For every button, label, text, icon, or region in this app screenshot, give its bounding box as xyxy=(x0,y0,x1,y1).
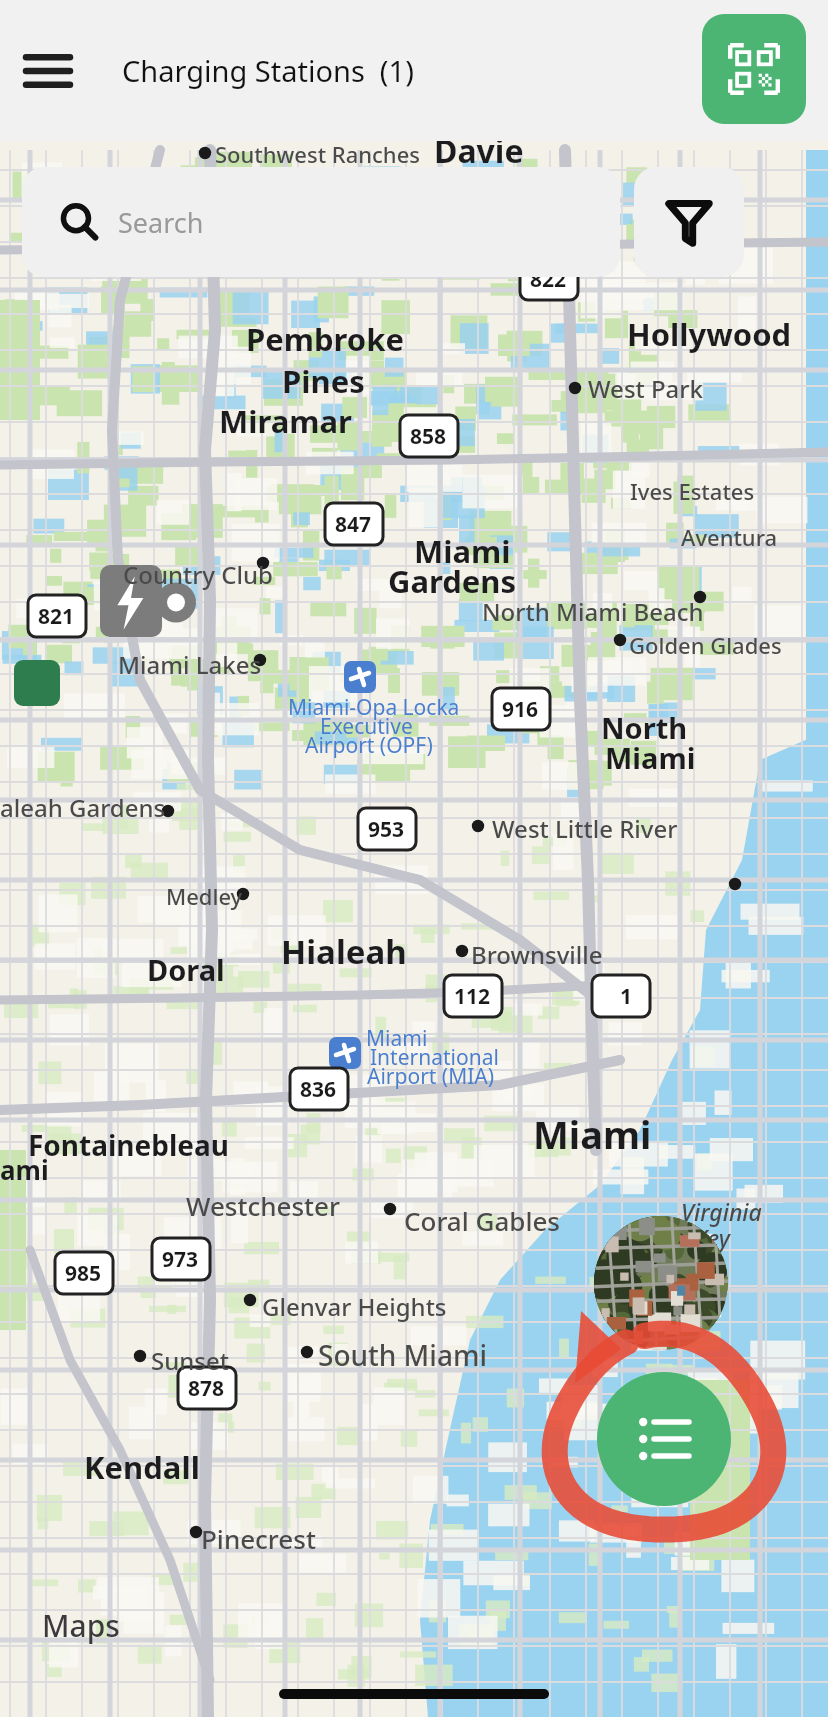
staticText: Brownsville xyxy=(471,938,603,971)
staticText: Medley xyxy=(166,881,243,911)
staticText: Miami-Opa Locka xyxy=(288,693,460,722)
button[interactable]: Scan QR code xyxy=(702,14,806,124)
staticText: 953 xyxy=(366,815,406,844)
staticText: 878 xyxy=(186,1374,226,1403)
staticText: Sunset xyxy=(151,1344,229,1377)
staticText: Aventura xyxy=(681,522,778,552)
staticText: International xyxy=(370,1043,499,1072)
staticText: Hollywood xyxy=(627,313,792,355)
staticText: 973 xyxy=(160,1245,200,1274)
staticText: Country Club xyxy=(123,558,273,591)
staticText: Pinecrest xyxy=(201,1521,316,1556)
staticText: West Park xyxy=(588,372,703,405)
staticText: ami xyxy=(0,1152,49,1187)
staticText: Golden Glades xyxy=(629,630,782,660)
staticText: 858 xyxy=(408,422,448,451)
staticText: Ives Estates xyxy=(630,476,755,506)
staticText: 1 xyxy=(606,982,646,1011)
staticText: Gardens xyxy=(388,560,517,602)
staticText: Key xyxy=(694,1222,730,1253)
staticText: Miami xyxy=(414,530,511,572)
button[interactable]: Show list xyxy=(597,1372,731,1506)
staticText: Airport (MIA) xyxy=(367,1062,495,1091)
staticText: Executive xyxy=(320,712,413,741)
staticText: West Little River xyxy=(492,812,678,845)
staticText: Maps xyxy=(42,1605,120,1646)
staticText: 112 xyxy=(452,982,492,1011)
staticText: 836 xyxy=(298,1075,338,1104)
staticText: aleah Gardens xyxy=(0,791,166,824)
staticText: Fontainebleau xyxy=(28,1126,230,1164)
staticText: Miami Lakes xyxy=(118,648,262,681)
staticText: Miami xyxy=(366,1024,428,1053)
staticText: Pembroke xyxy=(246,318,404,360)
staticText: Virginia xyxy=(681,1196,762,1227)
button[interactable]: Menu xyxy=(12,35,84,107)
staticText: Kendall xyxy=(84,1446,200,1488)
staticText: 822 xyxy=(528,265,568,294)
button[interactable]: Filter xyxy=(634,167,744,277)
staticText: 916 xyxy=(500,695,540,724)
staticText: Southwest Ranches xyxy=(215,139,420,169)
staticText: Pines xyxy=(282,360,365,402)
staticText: Hialeah xyxy=(281,929,407,974)
staticText: Doral xyxy=(147,950,225,989)
button[interactable]: Switch map type xyxy=(594,1216,728,1350)
staticText: Davie xyxy=(434,129,524,173)
staticText: Glenvar Heights xyxy=(262,1290,447,1323)
staticText: South Miami xyxy=(318,1336,487,1374)
staticText: Search xyxy=(118,204,204,241)
staticText: Coral Gables xyxy=(404,1203,561,1238)
staticText: North xyxy=(601,708,688,747)
staticText: Miami xyxy=(533,1108,652,1160)
staticText: Miami xyxy=(605,738,696,777)
staticText: 821 xyxy=(36,602,76,631)
staticText: Charging Stations (1) xyxy=(122,51,414,90)
staticText: Airport (OPF) xyxy=(305,731,433,760)
staticText: 985 xyxy=(63,1259,103,1288)
staticText: Miramar xyxy=(219,400,352,442)
staticText: 847 xyxy=(333,510,373,539)
button[interactable]: Search xyxy=(22,167,620,277)
staticText: Westchester xyxy=(186,1188,340,1223)
staticText: North Miami Beach xyxy=(482,595,704,628)
